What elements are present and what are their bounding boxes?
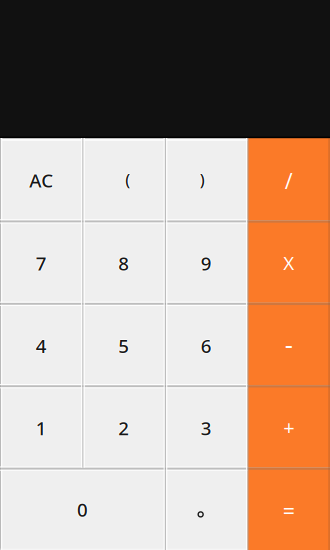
staticText: = bbox=[283, 496, 295, 524]
staticText: 8 bbox=[117, 251, 128, 276]
staticText: 9 bbox=[202, 251, 213, 276]
button[interactable]: - bbox=[247, 303, 330, 385]
staticText: 2 bbox=[119, 416, 130, 440]
staticText: - bbox=[285, 326, 293, 360]
staticText: + bbox=[282, 414, 293, 440]
staticText: + bbox=[284, 414, 295, 440]
button[interactable]: 4 bbox=[0, 303, 82, 385]
staticText: 0 bbox=[78, 497, 89, 522]
button[interactable]: 7 bbox=[0, 220, 82, 303]
staticText: 8 bbox=[118, 251, 129, 276]
staticText: 5 bbox=[117, 333, 128, 358]
staticText: 3 bbox=[201, 417, 212, 441]
button[interactable]: 0 bbox=[0, 468, 165, 550]
staticText: 7 bbox=[36, 251, 47, 276]
staticText: AC bbox=[29, 169, 53, 193]
staticText: + bbox=[283, 413, 294, 440]
staticText: 1 bbox=[36, 415, 47, 440]
staticText: = bbox=[283, 497, 295, 525]
staticText: 5 bbox=[118, 333, 129, 358]
staticText: / bbox=[285, 166, 293, 194]
button[interactable]: 6 bbox=[165, 303, 247, 385]
staticText: 4 bbox=[37, 333, 48, 358]
staticText: / bbox=[284, 166, 292, 195]
staticText: 8 bbox=[119, 251, 130, 276]
button[interactable]: AC bbox=[0, 138, 82, 220]
staticText: ( bbox=[125, 169, 130, 190]
staticText: 7 bbox=[35, 251, 46, 276]
staticText: 5 bbox=[118, 332, 129, 357]
button[interactable]: 5 bbox=[82, 303, 165, 385]
staticText: AC bbox=[28, 168, 52, 193]
staticText: 9 bbox=[201, 250, 212, 275]
staticText: 3 bbox=[201, 415, 212, 440]
staticText: 1 bbox=[35, 416, 46, 440]
staticText: 1 bbox=[36, 417, 47, 441]
staticText: / bbox=[285, 166, 293, 195]
button[interactable]: 3 bbox=[165, 385, 247, 468]
staticText: 4 bbox=[36, 334, 47, 359]
button[interactable]: Decimal point bbox=[165, 468, 247, 550]
button[interactable]: ) bbox=[165, 138, 247, 220]
staticText: 9 bbox=[200, 251, 211, 276]
staticText: 8 bbox=[118, 250, 129, 275]
staticText: 2 bbox=[118, 417, 129, 441]
staticText: AC bbox=[30, 168, 54, 193]
staticText: X bbox=[282, 250, 293, 275]
staticText: 2 bbox=[118, 415, 129, 440]
staticText: = bbox=[282, 497, 294, 525]
button[interactable]: ( bbox=[82, 138, 165, 220]
staticText: 5 bbox=[118, 334, 129, 359]
staticText: ) bbox=[200, 170, 205, 191]
staticText: 7 bbox=[36, 250, 47, 275]
button[interactable]: = bbox=[247, 468, 330, 550]
staticText: 4 bbox=[36, 332, 47, 357]
staticText: 0 bbox=[77, 497, 88, 522]
staticText: 6 bbox=[200, 333, 211, 358]
staticText: ( bbox=[126, 169, 131, 190]
staticText: - bbox=[284, 327, 292, 361]
button[interactable]: X bbox=[247, 220, 330, 303]
staticText: 3 bbox=[200, 416, 211, 440]
staticText: / bbox=[286, 166, 294, 195]
staticText: 0 bbox=[77, 496, 88, 521]
staticText: 3 bbox=[201, 416, 212, 440]
staticText: - bbox=[286, 327, 294, 361]
button[interactable]: 1 bbox=[0, 385, 82, 468]
staticText: = bbox=[283, 497, 295, 526]
staticText: ) bbox=[199, 169, 204, 190]
button[interactable]: 8 bbox=[82, 220, 165, 303]
staticText: 6 bbox=[201, 332, 212, 357]
staticText: ( bbox=[125, 168, 130, 189]
staticText: 7 bbox=[37, 251, 48, 276]
staticText: / bbox=[285, 167, 293, 196]
button[interactable]: / bbox=[247, 138, 330, 220]
staticText: 4 bbox=[35, 333, 46, 358]
staticText: 3 bbox=[202, 416, 213, 440]
staticText: 4 bbox=[36, 333, 47, 358]
staticText: + bbox=[283, 415, 294, 441]
staticText: 5 bbox=[119, 333, 130, 358]
staticText: X bbox=[284, 250, 295, 275]
staticText: 7 bbox=[36, 252, 47, 277]
staticText: 6 bbox=[202, 333, 213, 358]
staticText: ( bbox=[125, 170, 130, 191]
staticText: X bbox=[283, 249, 294, 274]
staticText: 6 bbox=[201, 334, 212, 359]
staticText: 1 bbox=[36, 416, 47, 440]
staticText: + bbox=[283, 414, 294, 440]
staticText: - bbox=[285, 328, 293, 362]
staticText: 1 bbox=[37, 416, 48, 440]
staticText: 9 bbox=[201, 252, 212, 277]
button[interactable]: 2 bbox=[82, 385, 165, 468]
button[interactable]: + bbox=[247, 385, 330, 468]
staticText: AC bbox=[29, 167, 53, 192]
staticText: 6 bbox=[201, 333, 212, 358]
staticText: 0 bbox=[76, 497, 87, 522]
staticText: 9 bbox=[201, 251, 212, 276]
button[interactable]: 9 bbox=[165, 220, 247, 303]
staticText: ( bbox=[124, 169, 129, 190]
staticText: X bbox=[283, 251, 294, 276]
staticText: ) bbox=[200, 168, 205, 189]
staticText: = bbox=[284, 497, 296, 525]
